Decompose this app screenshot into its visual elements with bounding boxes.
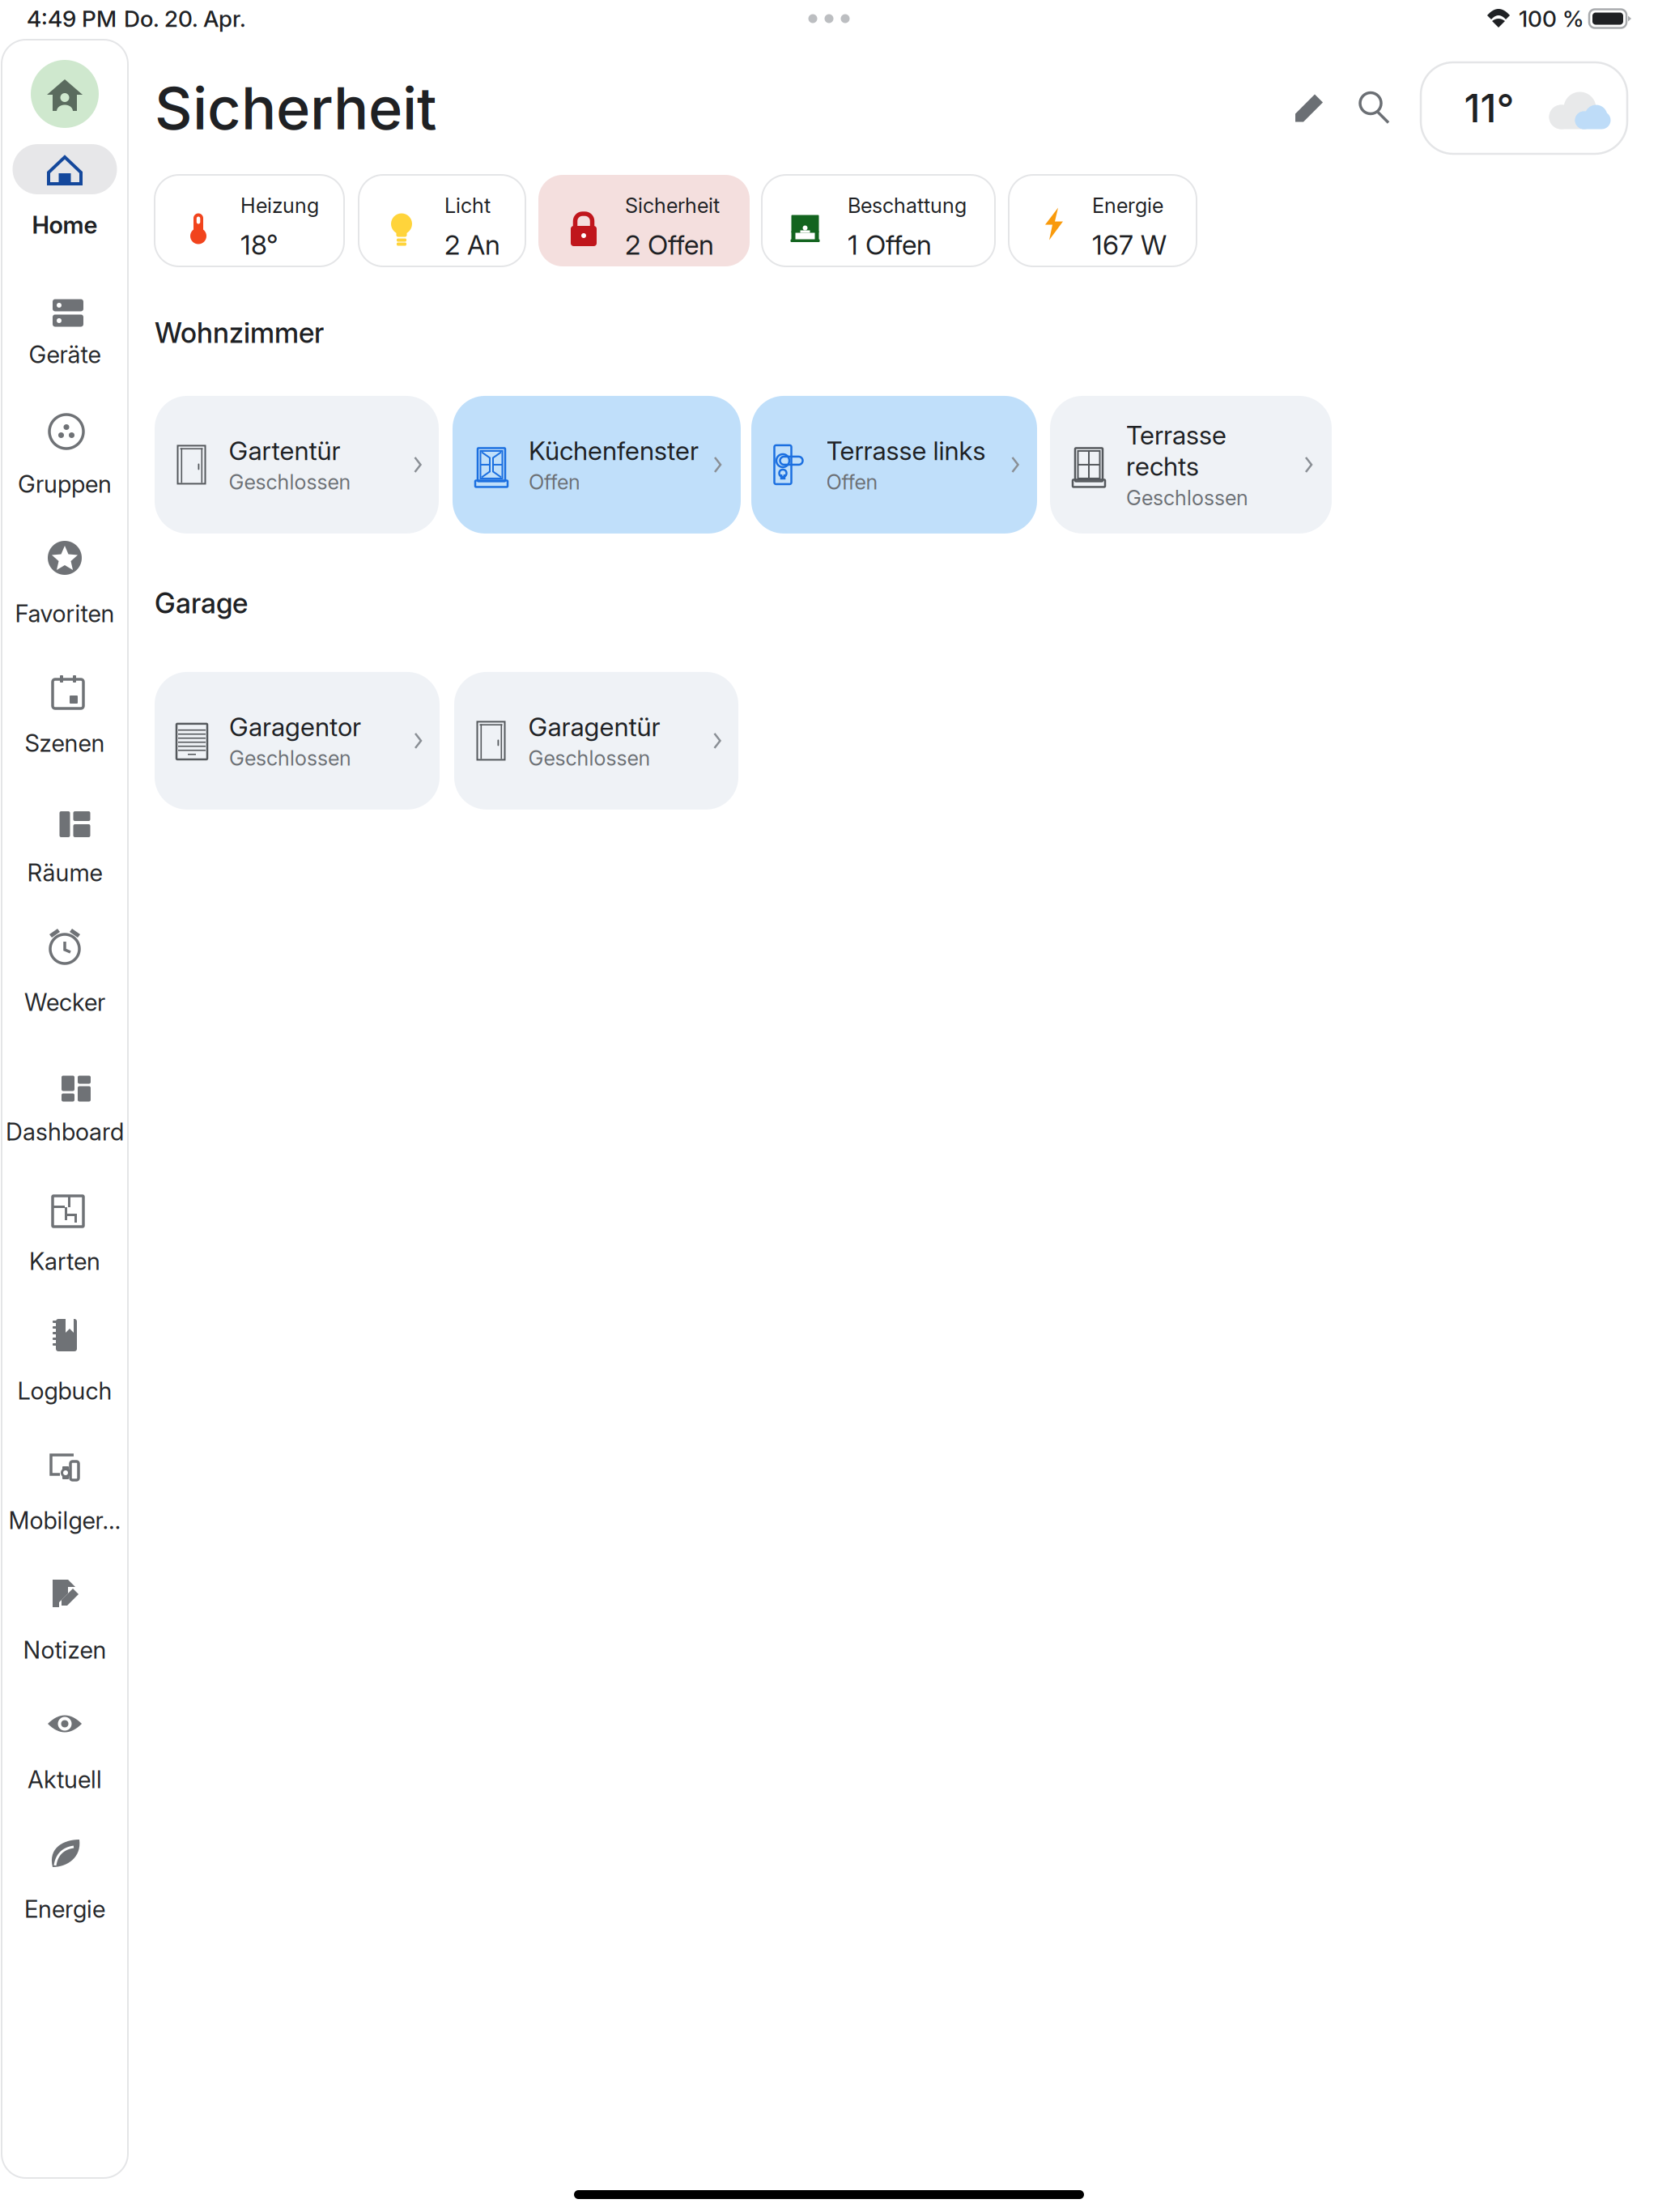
- button[interactable]: Logbuch: [2, 1310, 128, 1440]
- staticText: Szenen: [25, 729, 105, 757]
- button[interactable]: Karten: [2, 1180, 128, 1310]
- button[interactable]: Garagentür: [454, 672, 738, 810]
- staticText: Garagentor: [229, 711, 361, 742]
- staticText: Terrasse rechts: [1126, 419, 1226, 482]
- button[interactable]: Wecker: [2, 921, 128, 1051]
- staticText: 18°: [240, 228, 278, 261]
- button[interactable]: Energie: [1009, 175, 1197, 266]
- button[interactable]: Szenen: [2, 662, 128, 792]
- staticText: Karten: [29, 1247, 100, 1276]
- button[interactable]: Sicherheit: [538, 175, 750, 266]
- staticText: Garagentür: [528, 711, 660, 742]
- staticText: Offen: [529, 470, 580, 494]
- staticText: Geräte: [29, 340, 101, 369]
- button[interactable]: Energie: [2, 1828, 128, 1958]
- button[interactable]: Aktuell: [2, 1699, 128, 1828]
- button[interactable]: Räume: [2, 792, 128, 921]
- button[interactable]: Garagentor: [155, 672, 440, 810]
- button[interactable]: Geräte: [2, 274, 128, 403]
- button[interactable]: Home: [2, 144, 128, 274]
- staticText: Home: [32, 211, 98, 239]
- staticText: Energie: [1092, 193, 1163, 218]
- staticText: Favoriten: [15, 599, 115, 628]
- staticText: Wecker: [24, 988, 105, 1017]
- staticText: Küchenfenster: [529, 435, 699, 466]
- staticText: 167 W: [1092, 228, 1167, 261]
- staticText: 4:49 PM: [27, 5, 117, 32]
- staticText: Mobilger…: [9, 1506, 121, 1535]
- staticText: Wohnzimmer: [155, 316, 324, 350]
- staticText: Licht: [444, 193, 491, 218]
- staticText: 100 %: [1519, 5, 1584, 32]
- button[interactable]: Bearbeiten: [1295, 93, 1324, 123]
- staticText: Geschlossen: [528, 746, 650, 770]
- staticText: 1 Offen: [848, 228, 932, 261]
- staticText: Sicherheit: [625, 193, 720, 218]
- staticText: Geschlossen: [229, 470, 351, 494]
- button[interactable]: Terrasse links: [751, 396, 1037, 533]
- staticText: 2 Offen: [625, 228, 714, 261]
- staticText: Garage: [155, 586, 248, 620]
- button[interactable]: Dashboard: [2, 1051, 128, 1180]
- staticText: Terrasse links: [826, 435, 986, 466]
- button[interactable]: Gruppen: [2, 403, 128, 533]
- staticText: Beschattung: [848, 193, 967, 218]
- button[interactable]: Küchenfenster: [453, 396, 741, 533]
- button[interactable]: Suchen: [1360, 93, 1389, 123]
- button[interactable]: 11°: [1421, 62, 1627, 154]
- staticText: Do. 20. Apr.: [124, 5, 246, 32]
- staticText: Energie: [24, 1895, 105, 1923]
- staticText: Sicherheit: [155, 73, 437, 143]
- staticText: Notizen: [23, 1636, 106, 1664]
- button[interactable]: Licht: [359, 175, 525, 266]
- button[interactable]: Favoriten: [2, 533, 128, 662]
- staticText: Aktuell: [28, 1765, 102, 1794]
- staticText: 2 An: [444, 228, 500, 261]
- staticText: Heizung: [240, 193, 319, 218]
- staticText: Gartentür: [229, 435, 340, 466]
- staticText: 11°: [1464, 85, 1514, 132]
- button[interactable]: Mobilger…: [2, 1440, 128, 1569]
- button[interactable]: Notizen: [2, 1569, 128, 1699]
- button[interactable]: Heizung: [155, 175, 344, 266]
- staticText: Offen: [826, 470, 878, 494]
- button[interactable]: Gartentür: [155, 396, 439, 533]
- staticText: Geschlossen: [1126, 485, 1248, 510]
- staticText: Geschlossen: [229, 746, 351, 770]
- staticText: Dashboard: [6, 1117, 124, 1146]
- staticText: Gruppen: [18, 470, 112, 498]
- button[interactable]: Beschattung: [762, 175, 995, 266]
- staticText: Logbuch: [17, 1376, 112, 1405]
- button[interactable]: Terrasse rechts: [1050, 396, 1332, 533]
- staticText: Räume: [27, 858, 102, 887]
